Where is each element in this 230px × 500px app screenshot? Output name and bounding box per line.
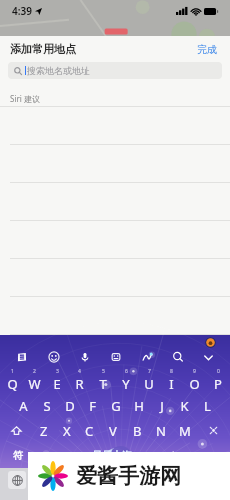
- staticText: 4: [78, 368, 81, 375]
- button[interactable]: 2: [23, 368, 45, 393]
- staticText: 搜索地名或地址: [27, 65, 90, 76]
- staticText: Q: [7, 375, 18, 393]
- button[interactable]: Stickers: [100, 347, 131, 367]
- button[interactable]: 0: [206, 368, 229, 393]
- button[interactable]: C: [78, 418, 101, 443]
- staticText: X: [63, 422, 71, 440]
- staticText: J: [160, 397, 164, 415]
- staticText: E: [53, 375, 61, 393]
- staticText: Z: [40, 422, 48, 440]
- staticText: P: [214, 375, 222, 393]
- staticText: 8: [170, 368, 173, 375]
- staticText: V: [109, 422, 117, 440]
- staticText: 7: [148, 368, 151, 375]
- staticText: K: [180, 397, 189, 415]
- staticText: B: [133, 422, 142, 440]
- staticText: 符: [13, 449, 23, 462]
- button[interactable]: B: [125, 418, 149, 443]
- button[interactable]: Hide keyboard: [193, 347, 224, 367]
- button[interactable]: [0, 297, 230, 335]
- staticText: A: [19, 397, 28, 415]
- staticText: 2: [33, 368, 36, 375]
- staticText: D: [65, 397, 75, 415]
- button[interactable]: V: [101, 418, 125, 443]
- button[interactable]: 搜索地名或地址: [8, 62, 222, 79]
- button[interactable]: 7: [137, 368, 160, 393]
- staticText: 9: [193, 368, 196, 375]
- staticText: L: [204, 397, 211, 415]
- staticText: 1: [11, 368, 14, 375]
- button[interactable]: [0, 107, 230, 145]
- button[interactable]: Account: [205, 337, 216, 348]
- button[interactable]: Voice input: [69, 347, 100, 367]
- button[interactable]: Switch keyboard: [8, 471, 26, 489]
- staticText: W: [28, 375, 41, 393]
- button[interactable]: [0, 183, 230, 221]
- button[interactable]: N: [149, 418, 173, 443]
- button[interactable]: Z: [32, 418, 55, 443]
- button[interactable]: S: [35, 393, 58, 418]
- staticText: Y: [122, 375, 130, 393]
- button[interactable]: [0, 259, 230, 297]
- staticText: C: [85, 422, 94, 440]
- button[interactable]: Emoji: [38, 347, 69, 367]
- button[interactable]: Return: [194, 443, 228, 468]
- button[interactable]: [0, 221, 230, 259]
- button[interactable]: 6: [114, 368, 137, 393]
- button[interactable]: 符: [2, 443, 33, 468]
- staticText: 爱酱手游网: [76, 463, 181, 489]
- staticText: U: [144, 375, 154, 393]
- staticText: 星辰大海: [92, 449, 132, 462]
- button[interactable]: Handwriting: [131, 347, 162, 367]
- staticText: 完成: [197, 43, 217, 56]
- button[interactable]: 8: [160, 368, 183, 393]
- staticText: 添加常用地点: [10, 42, 76, 56]
- staticText: 5: [102, 368, 105, 375]
- button[interactable]: A: [11, 393, 35, 418]
- button[interactable]: 3: [45, 368, 68, 393]
- button[interactable]: 星辰大海: [64, 443, 160, 468]
- button[interactable]: 中: [160, 443, 194, 468]
- button[interactable]: 9: [183, 368, 206, 393]
- staticText: 3: [56, 368, 59, 375]
- button[interactable]: X: [55, 418, 78, 443]
- staticText: G: [111, 397, 121, 415]
- staticText: O: [189, 375, 200, 393]
- staticText: R: [75, 375, 84, 393]
- staticText: H: [134, 397, 144, 415]
- button[interactable]: G: [104, 393, 127, 418]
- button[interactable]: Shift: [1, 418, 32, 443]
- staticText: 4:39: [12, 4, 32, 18]
- button[interactable]: 123: [33, 443, 64, 468]
- staticText: 123: [40, 449, 58, 463]
- staticText: 中: [169, 450, 178, 461]
- staticText: Siri 建议: [10, 93, 40, 104]
- button[interactable]: D: [58, 393, 81, 418]
- staticText: I: [169, 375, 174, 393]
- staticText: F: [89, 397, 96, 415]
- button[interactable]: L: [196, 393, 219, 418]
- button[interactable]: Search: [162, 347, 193, 367]
- staticText: T: [99, 375, 107, 393]
- staticText: M: [179, 422, 191, 440]
- button[interactable]: Delete: [197, 418, 229, 443]
- staticText: S: [43, 397, 51, 415]
- button[interactable]: F: [81, 393, 104, 418]
- button[interactable]: H: [127, 393, 150, 418]
- button[interactable]: J: [150, 393, 173, 418]
- staticText: 0: [217, 368, 220, 375]
- button[interactable]: Sogou input method: [6, 347, 38, 367]
- button[interactable]: [0, 145, 230, 183]
- button[interactable]: K: [173, 393, 196, 418]
- staticText: N: [156, 422, 166, 440]
- button[interactable]: 5: [91, 368, 114, 393]
- button[interactable]: 完成: [194, 41, 220, 58]
- staticText: 6: [125, 368, 128, 375]
- button[interactable]: 4: [68, 368, 91, 393]
- button[interactable]: 1: [1, 368, 23, 393]
- button[interactable]: M: [173, 418, 197, 443]
